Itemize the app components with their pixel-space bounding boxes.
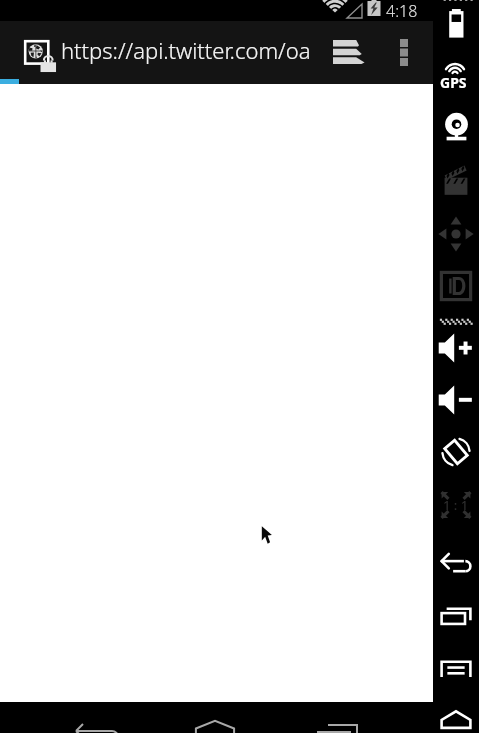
button[interactable]: More options [380, 21, 432, 79]
button[interactable]: Volume up [433, 328, 479, 368]
button[interactable]: Tabs [318, 21, 376, 79]
button[interactable]: Volume down [433, 380, 479, 420]
staticText: 1 : 1 [443, 496, 469, 514]
button[interactable]: Site security info [8, 24, 58, 76]
button[interactable]: Camera [433, 107, 479, 147]
button[interactable]: Battery [433, 4, 479, 44]
button[interactable]: Location [433, 58, 479, 98]
button[interactable]: Home [177, 702, 257, 733]
button[interactable]: Cellular [433, 0, 479, 18]
button[interactable]: Record screen [433, 160, 479, 200]
button[interactable]: Back [57, 702, 137, 733]
staticText: 4:18 [386, 0, 418, 21]
button[interactable]: Directional pad [433, 214, 479, 254]
button[interactable]: https://api.twitter.com/oauth [61, 21, 309, 79]
button[interactable]: Back [433, 544, 479, 584]
staticText: GPS [440, 73, 467, 92]
button[interactable]: Phone ID [433, 266, 479, 306]
button[interactable]: Zoom 1:1 [433, 487, 479, 523]
button[interactable]: Home [433, 700, 479, 733]
button[interactable]: Overview [433, 596, 479, 636]
staticText: https://api.twitter.com/oauth [61, 35, 309, 65]
button[interactable]: Menu [433, 649, 479, 689]
button[interactable]: Recents [297, 702, 377, 733]
button[interactable]: Cellular signal [433, 302, 479, 342]
button[interactable]: Rotate [433, 432, 479, 472]
